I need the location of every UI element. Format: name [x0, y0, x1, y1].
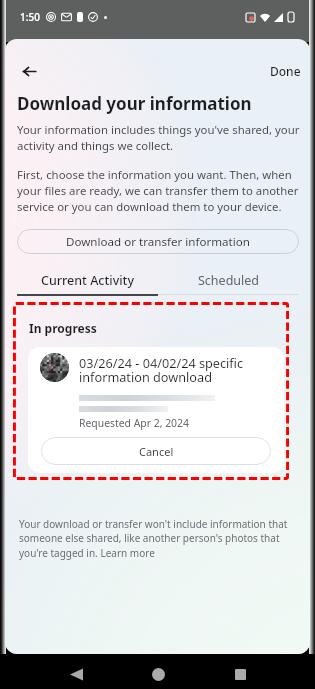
staticText: Download your information [17, 92, 252, 115]
staticText: 03/26/24 - 04/02/24 specific information… [79, 354, 279, 386]
staticText: Cancel [139, 444, 174, 459]
staticText: 1:50 [20, 10, 40, 24]
staticText: In progress [29, 320, 97, 336]
staticText: Your download or transfer won't include … [19, 517, 308, 560]
button[interactable]: Home [140, 657, 176, 689]
staticText: Done [270, 63, 301, 79]
button[interactable]: Back [16, 58, 42, 84]
button[interactable]: Cancel [41, 437, 271, 465]
button[interactable]: Current Activity [17, 272, 158, 296]
button[interactable]: 03/26/24 - 04/02/24 specific information… [28, 347, 284, 473]
button[interactable]: Recent apps [222, 657, 258, 689]
staticText: Scheduled [198, 272, 260, 289]
staticText: Requested Apr 2, 2024 [79, 416, 189, 430]
staticText: Current Activity [41, 272, 134, 289]
button[interactable]: Done [267, 60, 304, 82]
staticText: First, choose the information you want. … [17, 167, 300, 215]
button[interactable]: Back [58, 657, 94, 689]
staticText: Your information includes things you've … [17, 122, 300, 154]
button[interactable]: Download or transfer information [17, 229, 299, 254]
button[interactable]: Scheduled [158, 272, 299, 295]
staticText: Download or transfer information [66, 234, 250, 250]
